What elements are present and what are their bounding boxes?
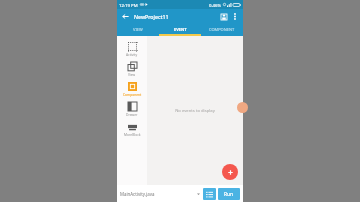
- button[interactable]: Drawer: [117, 99, 147, 119]
- staticText: Run: [224, 191, 234, 198]
- staticText: No events to display: [175, 108, 215, 114]
- staticText: VIEW: [133, 27, 143, 32]
- staticText: MoreBlock: [124, 132, 141, 136]
- staticText: 12:19 PM: [119, 2, 138, 8]
- button[interactable]: View: [117, 59, 147, 79]
- staticText: EVENT: [174, 27, 187, 32]
- staticText: Activity: [126, 52, 138, 56]
- button[interactable]: Back: [120, 11, 131, 22]
- button[interactable]: Add event: [222, 164, 238, 180]
- button[interactable]: Source code: [203, 188, 216, 200]
- button[interactable]: Run: [218, 188, 240, 200]
- button[interactable]: EVENT: [159, 23, 201, 36]
- button[interactable]: Shortcut: [237, 102, 248, 113]
- staticText: Drawer: [126, 112, 138, 116]
- button[interactable]: MainActivity.java: [120, 191, 203, 197]
- button[interactable]: Component: [117, 79, 147, 99]
- staticText: 0.46%: [209, 2, 222, 8]
- staticText: Component: [123, 92, 142, 96]
- button[interactable]: Save: [218, 11, 229, 22]
- button[interactable]: VIEW: [117, 23, 159, 36]
- staticText: NewProject11: [134, 13, 169, 20]
- button[interactable]: COMPONENT: [201, 23, 243, 36]
- staticText: View: [128, 72, 136, 76]
- staticText: MainActivity.java: [120, 191, 155, 197]
- button[interactable]: More options: [230, 11, 240, 21]
- button[interactable]: MoreBlock: [117, 119, 147, 139]
- staticText: COMPONENT: [209, 27, 235, 32]
- button[interactable]: Activity: [117, 39, 147, 59]
